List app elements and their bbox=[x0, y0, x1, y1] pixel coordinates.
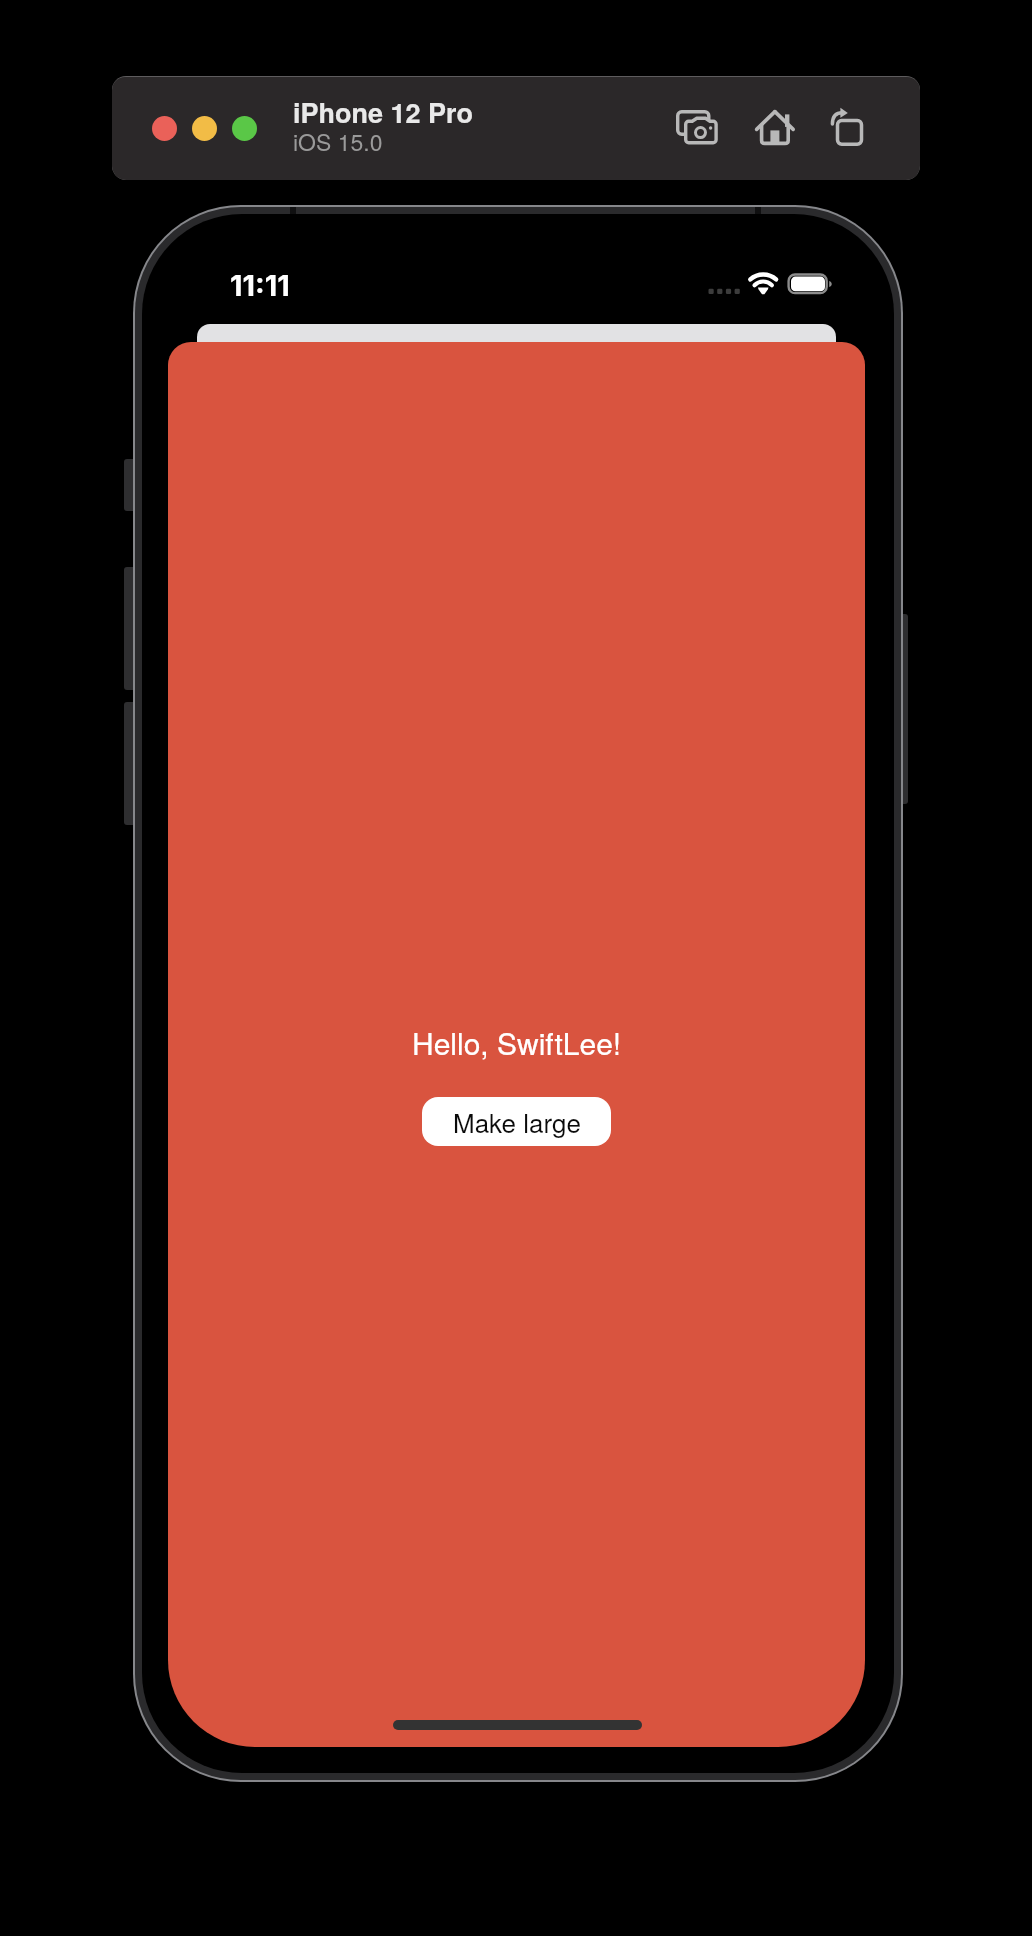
button[interactable] bbox=[152, 116, 177, 141]
staticText: iPhone 12 Pro bbox=[293, 93, 474, 132]
staticText: Hello, SwiftLee! bbox=[412, 1021, 622, 1064]
button[interactable]: Home bbox=[754, 96, 804, 140]
staticText: Make large bbox=[453, 1103, 581, 1140]
button[interactable]: Screenshot bbox=[674, 96, 724, 148]
staticText: 11:11 bbox=[230, 268, 290, 303]
button[interactable]: Make large bbox=[422, 1097, 611, 1146]
button[interactable]: Rotate bbox=[828, 96, 878, 140]
button[interactable] bbox=[232, 116, 257, 141]
button[interactable] bbox=[192, 116, 217, 141]
staticText: iOS 15.0 bbox=[293, 125, 383, 158]
